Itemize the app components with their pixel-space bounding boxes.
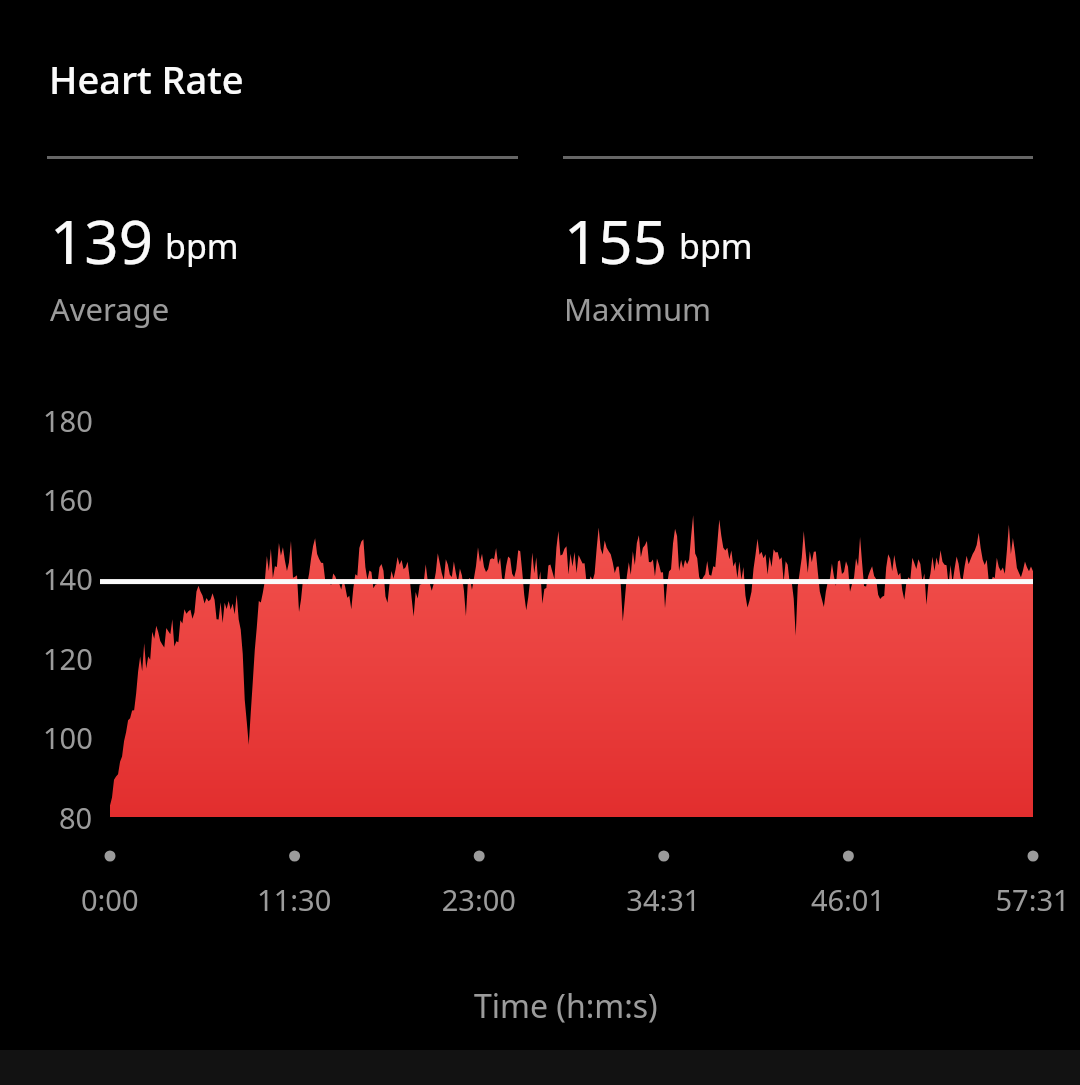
button[interactable]: Heart rate workout chart xyxy=(0,0,1080,1085)
